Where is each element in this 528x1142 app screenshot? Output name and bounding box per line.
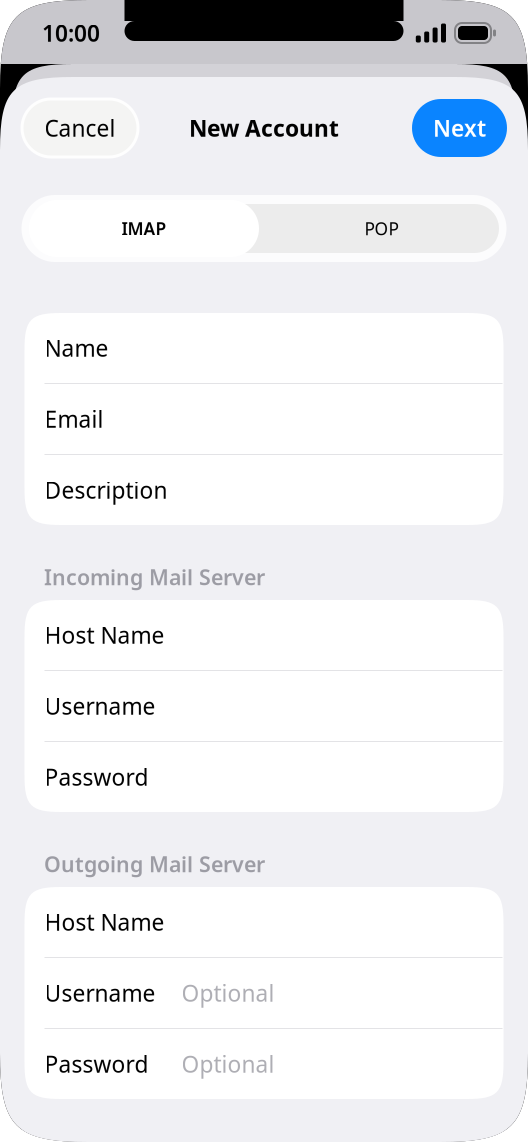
staticText: Description (44, 475, 167, 505)
staticText: Name (44, 333, 108, 363)
staticText: Password (44, 1049, 148, 1079)
button[interactable]: IMAP (29, 200, 259, 257)
button[interactable]: Next (412, 99, 507, 157)
staticText: Username (44, 691, 155, 721)
staticText: Host Name (44, 620, 164, 650)
staticText: Incoming Mail Server (44, 563, 265, 591)
button[interactable]: POP (259, 200, 504, 257)
button[interactable]: Cancel (22, 99, 138, 157)
staticText: Password (44, 762, 148, 792)
staticText: New Account (189, 113, 339, 143)
staticText: Next (433, 113, 486, 143)
staticText: 10:00 (42, 18, 100, 48)
staticText: IMAP (121, 217, 166, 240)
staticText: Host Name (44, 907, 164, 937)
staticText: Optional (181, 978, 274, 1008)
staticText: Username (44, 978, 155, 1008)
staticText: Cancel (44, 113, 115, 143)
staticText: Optional (181, 1049, 274, 1079)
staticText: Email (44, 404, 103, 434)
staticText: POP (364, 217, 398, 240)
staticText: Outgoing Mail Server (44, 850, 265, 878)
